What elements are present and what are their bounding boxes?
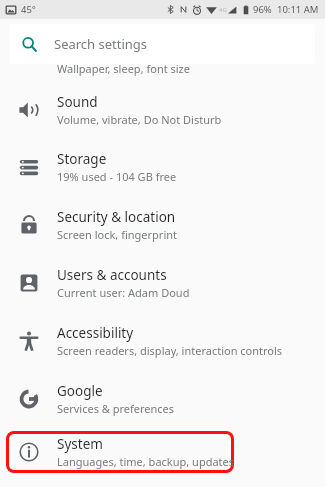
staticText: Accessibility [57,324,134,342]
staticText: 19% used - 104 GB free [57,169,177,184]
button[interactable]: Users & accounts [0,254,325,312]
staticText: Screen lock, fingerprint [57,227,178,242]
staticText: Google [57,382,103,400]
staticText: Sound [57,93,98,111]
button[interactable]: Security & location [0,196,325,254]
staticText: Services & preferences [57,401,175,416]
staticText: Screen readers, display, interaction con… [57,343,283,358]
button[interactable]: Storage [0,138,325,196]
button[interactable]: System [0,427,325,477]
staticText: Languages, time, backup, updates [57,454,235,469]
staticText: 4G [219,6,227,14]
staticText: Security & location [57,208,176,226]
staticText: System [57,435,103,453]
staticText: 96% [253,3,272,16]
staticText: Search settings [54,35,148,53]
button[interactable]: Accessibility [0,312,325,370]
button[interactable]: Google [0,370,325,427]
staticText: Volume, vibrate, Do Not Disturb [57,112,222,127]
staticText: Users & accounts [57,266,167,284]
staticText: 10:11 AM [277,3,319,16]
button[interactable]: Search settings [10,24,315,64]
staticText: 45° [21,3,36,16]
button[interactable]: Sound [0,82,325,138]
staticText: Wallpaper, sleep, font size [57,61,190,76]
staticText: Storage [57,150,107,168]
staticText: Current user: Adam Doud [57,285,190,300]
